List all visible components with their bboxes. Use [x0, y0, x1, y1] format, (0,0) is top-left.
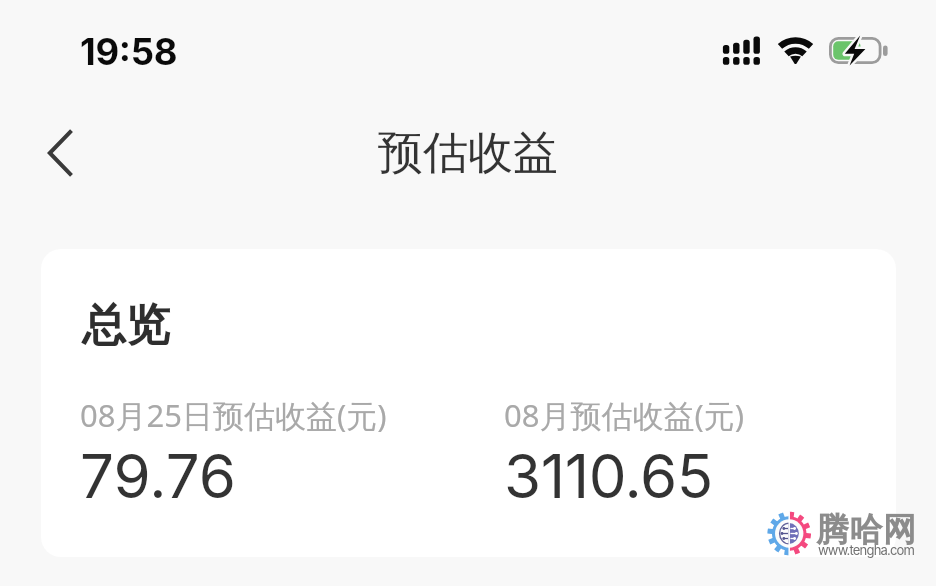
staticText: 79.76	[80, 440, 236, 513]
staticText: 预估收益	[378, 125, 558, 182]
button[interactable]: 总览	[41, 249, 896, 557]
staticText: 08月25日预估收益(元)	[80, 394, 387, 436]
staticText: 总览	[82, 298, 170, 353]
staticText: 19:58	[80, 30, 178, 74]
staticText: www.tengha.com	[818, 542, 915, 558]
staticText: 3110.65	[504, 440, 713, 513]
staticText: 08月预估收益(元)	[504, 394, 745, 436]
staticText: 腾哈网	[816, 509, 917, 551]
button[interactable]: Back	[22, 128, 98, 206]
